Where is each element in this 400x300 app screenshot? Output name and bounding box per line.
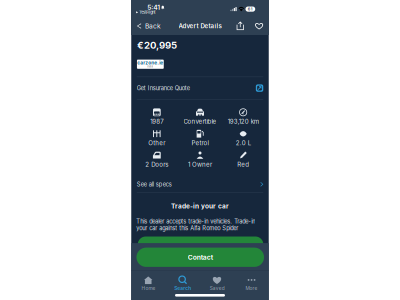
button[interactable]: Saved	[200, 273, 234, 294]
staticText: Red	[237, 161, 249, 168]
button[interactable]: Back	[131, 17, 165, 35]
staticText: This dealer accepts trade-in vehicles. T…	[136, 218, 255, 232]
button[interactable]: Share	[234, 17, 247, 34]
button[interactable]: Contact	[136, 248, 264, 267]
staticText: Home	[141, 285, 155, 291]
staticText: 1 Owner	[188, 161, 212, 168]
staticText: Saved	[210, 285, 225, 291]
staticText: 1987	[150, 118, 163, 125]
button[interactable]: Home	[131, 273, 166, 294]
staticText: More	[246, 285, 258, 291]
button[interactable]: More	[234, 273, 269, 294]
staticText: Search	[174, 285, 191, 291]
button[interactable]: See all specs	[131, 177, 269, 192]
staticText: motor	[147, 65, 153, 68]
staticText: Back	[145, 22, 161, 30]
staticText: Get Insurance Quote	[137, 85, 190, 91]
staticText: Contact	[188, 253, 213, 261]
button[interactable]: Search	[166, 273, 200, 294]
staticText: See all specs	[137, 181, 172, 188]
staticText: Convertible	[183, 118, 216, 125]
staticText: carzone.ie	[137, 60, 163, 66]
staticText: 193,120 km	[228, 118, 259, 125]
button[interactable]: Save advert	[252, 18, 266, 33]
staticText: 5:41	[147, 3, 160, 11]
staticText: Trade-in your car	[171, 202, 229, 210]
staticText: Advert Details	[178, 22, 221, 30]
staticText: 2.0 L	[236, 139, 251, 147]
button[interactable]: Get Insurance Quote	[131, 77, 269, 99]
staticText: €20,995	[137, 39, 177, 51]
staticText: TestFlight	[139, 10, 155, 15]
staticText: Petrol	[191, 139, 208, 147]
staticText: 61	[248, 7, 253, 11]
button[interactable]: Value my car	[138, 236, 263, 255]
staticText: 2 Doors	[145, 161, 168, 168]
staticText: Other	[148, 139, 165, 147]
